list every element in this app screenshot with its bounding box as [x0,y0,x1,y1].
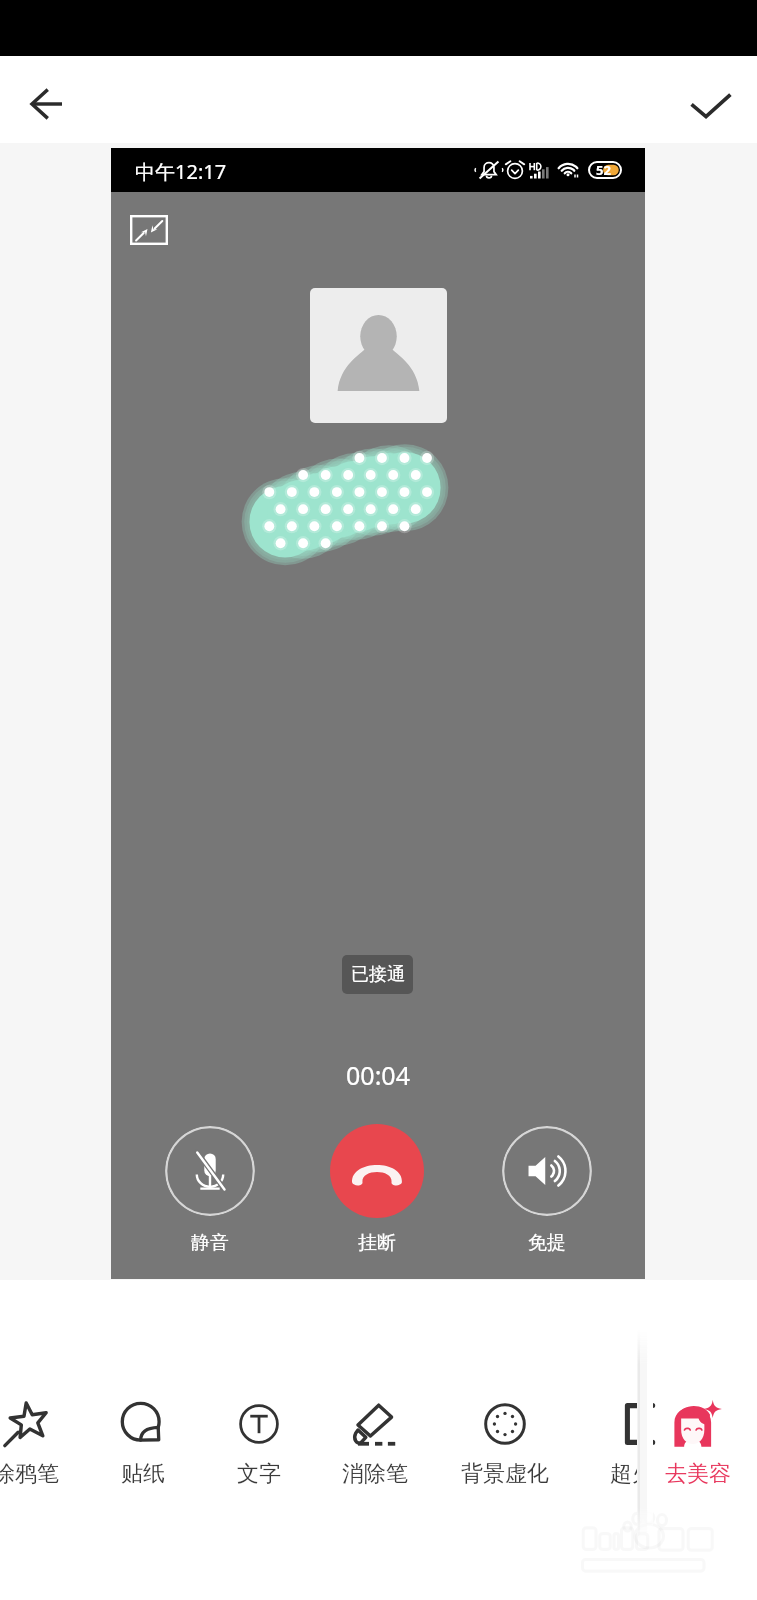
button[interactable]: 超火 [576,1392,688,1496]
staticText: 贴纸 [121,1460,165,1488]
button[interactable]: 贴纸 [87,1392,199,1496]
staticText: 超火 [610,1460,654,1488]
staticText: 消除笔 [342,1460,408,1488]
staticText: 免提 [528,1231,566,1255]
button[interactable]: 去美容 [644,1392,752,1496]
staticText: 背景虚化 [461,1460,549,1488]
staticText: 52 [596,161,611,179]
staticText: 挂断 [358,1231,396,1255]
button[interactable]: 免提 [502,1126,592,1216]
staticText: 文字 [237,1460,281,1488]
button[interactable]: Back [10,68,82,140]
button[interactable]: 静音 [165,1126,255,1216]
button[interactable]: 挂断 [330,1124,424,1218]
button[interactable]: 消除笔 [319,1392,431,1496]
button[interactable]: 背景虚化 [449,1392,561,1496]
button[interactable]: 文字 [203,1392,315,1496]
staticText: 涂鸦笔 [0,1460,59,1488]
button[interactable]: 涂鸦笔 [0,1392,82,1496]
staticText: 去美容 [665,1460,731,1488]
button[interactable]: Confirm [674,70,746,142]
staticText: 中午12:17 [135,158,227,185]
staticText: 已接通 [351,963,405,986]
staticText: 00:04 [346,1058,410,1092]
button[interactable]: Shrink [130,215,168,245]
staticText: 静音 [191,1231,229,1255]
